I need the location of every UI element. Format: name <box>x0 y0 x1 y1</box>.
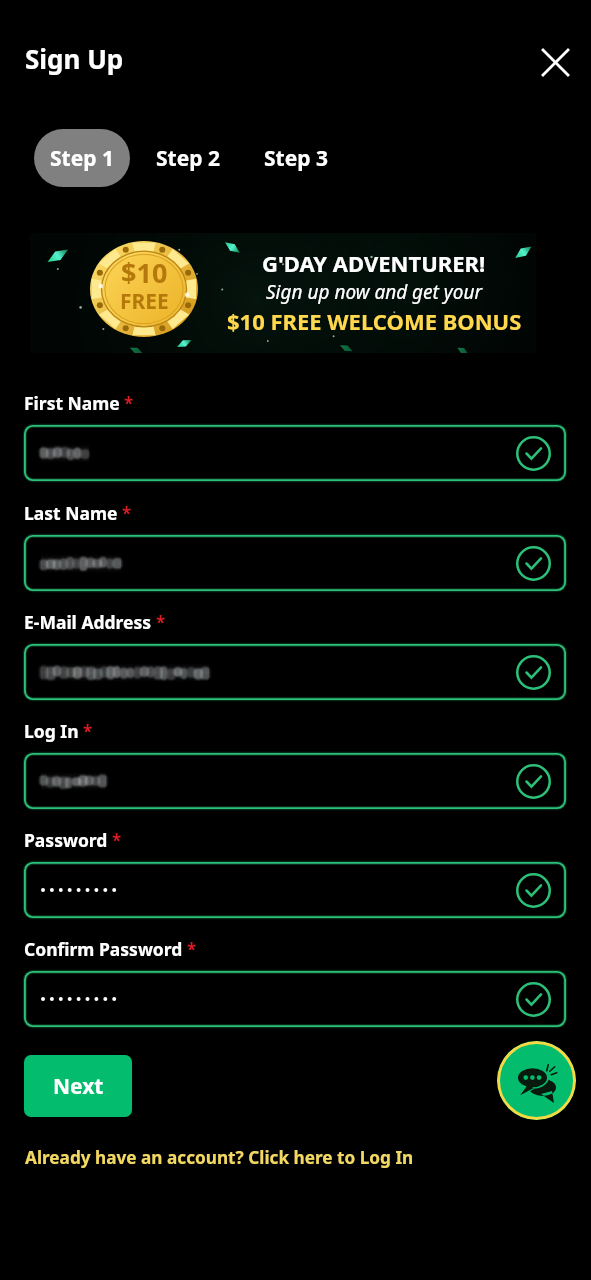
button[interactable]: Close <box>534 41 576 83</box>
staticText: * <box>187 938 197 961</box>
button[interactable] <box>24 644 566 700</box>
staticText: Step 1 <box>50 144 114 173</box>
staticText: G'DAY ADVENTURER! <box>262 248 486 278</box>
button[interactable] <box>24 971 566 1027</box>
staticText: Step 2 <box>156 144 220 173</box>
button[interactable] <box>24 425 566 481</box>
staticText: Log In <box>24 719 79 743</box>
staticText: Already have an account? Click here to L… <box>25 1146 414 1169</box>
staticText: * <box>122 502 132 525</box>
staticText: Password <box>24 828 108 852</box>
staticText: * <box>156 611 166 634</box>
staticText: First Name <box>24 391 120 415</box>
staticText: $10 FREE WELCOME BONUS <box>227 306 522 336</box>
button[interactable]: Already have an account? Click here to L… <box>25 1145 414 1170</box>
staticText: Step 3 <box>264 144 328 173</box>
staticText: Last Name <box>24 501 118 525</box>
button[interactable]: $10 <box>30 233 536 353</box>
button[interactable] <box>24 753 566 809</box>
staticText: E-Mail Address <box>24 610 152 634</box>
button[interactable]: Live chat <box>497 1041 576 1120</box>
button[interactable]: Step 2 <box>142 129 234 187</box>
button[interactable]: Next <box>24 1055 132 1117</box>
staticText: Next <box>53 1072 104 1101</box>
staticText: Confirm Password <box>24 937 183 961</box>
staticText: Sign up now and get your <box>266 279 482 305</box>
staticText: $10 <box>121 254 168 291</box>
staticText: * <box>83 720 93 743</box>
staticText: * <box>124 392 134 415</box>
staticText: FREE <box>120 287 169 316</box>
staticText: Sign Up <box>25 41 124 76</box>
button[interactable] <box>24 862 566 918</box>
button[interactable]: Step 3 <box>250 129 342 187</box>
staticText: * <box>112 829 122 852</box>
button[interactable]: Step 1 <box>34 129 130 187</box>
button[interactable] <box>24 535 566 591</box>
